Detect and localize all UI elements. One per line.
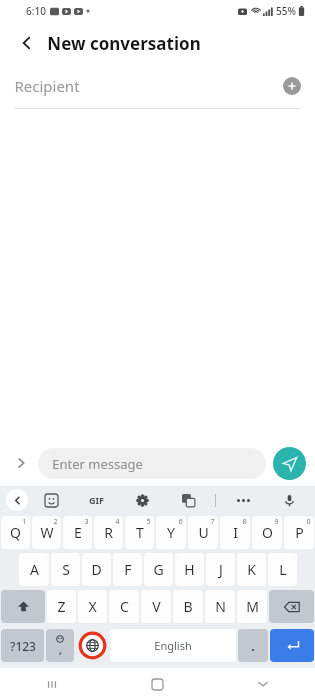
button[interactable]: Settings [129, 487, 155, 513]
button[interactable]: Enter [270, 629, 314, 662]
staticText: Enter message [52, 455, 143, 473]
staticText: 55% [276, 4, 296, 18]
staticText: 0 [306, 517, 311, 527]
button[interactable]: U [188, 516, 218, 549]
staticText: N [215, 597, 226, 616]
button[interactable]: T [125, 516, 154, 549]
button[interactable]: B [173, 590, 203, 623]
staticText: R [104, 523, 113, 542]
button[interactable]: Z [47, 590, 76, 623]
button[interactable]: Collapse toolbar [6, 489, 28, 511]
button[interactable]: Hide keyboard [210, 668, 315, 700]
staticText: I [233, 523, 238, 542]
button[interactable]: K [237, 553, 266, 586]
staticText: W [40, 523, 54, 542]
button[interactable]: Enter message [38, 448, 266, 479]
button[interactable]: I [220, 516, 250, 549]
staticText: P [295, 523, 304, 542]
staticText: S [62, 560, 70, 579]
staticText: 6 [178, 517, 183, 527]
button[interactable]: O [252, 516, 282, 549]
button[interactable]: J [206, 553, 235, 586]
button[interactable]: H [175, 553, 204, 586]
button[interactable]: E [63, 516, 92, 549]
button[interactable]: N [205, 590, 235, 623]
staticText: , [59, 643, 62, 657]
button[interactable]: R [94, 516, 123, 549]
staticText: Y [167, 523, 175, 542]
staticText: 1 [22, 517, 27, 527]
button[interactable]: Send [273, 447, 306, 480]
button[interactable]: V [141, 590, 171, 623]
button[interactable]: Shift [1, 590, 45, 623]
staticText: Recipient [14, 76, 80, 96]
staticText: English [154, 638, 192, 653]
staticText: U [198, 523, 209, 542]
staticText: M [246, 597, 259, 616]
button[interactable]: Home [105, 668, 210, 700]
button[interactable]: M [237, 590, 267, 623]
staticText: GIF [89, 494, 104, 506]
button[interactable]: Stickers [38, 487, 64, 513]
button[interactable]: Expand [9, 451, 33, 475]
button[interactable]: Emoji and comma [46, 629, 74, 662]
staticText: B [183, 597, 193, 616]
button[interactable]: Voice input [276, 487, 302, 513]
staticText: 8 [242, 517, 247, 527]
button[interactable]: Translate [175, 487, 201, 513]
staticText: O [262, 523, 273, 542]
staticText: ?123 [10, 638, 36, 654]
staticText: T [136, 523, 144, 542]
staticText: New conversation [47, 32, 201, 55]
button[interactable]: More options [230, 487, 256, 513]
button[interactable]: A [19, 553, 49, 586]
staticText: 3 [84, 517, 89, 527]
staticText: 9 [274, 517, 279, 527]
button[interactable]: D [82, 553, 111, 586]
button[interactable]: W [32, 516, 61, 549]
staticText: F [124, 560, 132, 579]
staticText: G [153, 560, 164, 579]
button[interactable]: F [113, 553, 142, 586]
staticText: E [74, 523, 82, 542]
button[interactable]: S [51, 553, 80, 586]
staticText: J [219, 560, 223, 579]
staticText: . [251, 637, 255, 655]
staticText: H [184, 560, 195, 579]
staticText: 2 [53, 517, 58, 527]
button[interactable]: Recents [0, 668, 105, 700]
staticText: V [152, 597, 161, 616]
staticText: 6:10 [26, 4, 46, 18]
button[interactable]: Y [156, 516, 186, 549]
staticText: L [279, 560, 287, 579]
button[interactable]: G [144, 553, 173, 586]
button[interactable]: L [268, 553, 297, 586]
button[interactable]: Q [1, 516, 30, 549]
staticText: X [88, 597, 97, 616]
staticText: K [247, 560, 256, 579]
button[interactable]: Backspace [269, 590, 314, 623]
button[interactable]: Back [14, 30, 40, 56]
button[interactable]: C [109, 590, 139, 623]
staticText: A [30, 560, 39, 579]
button[interactable]: X [78, 590, 107, 623]
staticText: C [120, 597, 129, 616]
staticText: D [91, 560, 102, 579]
staticText: 5 [146, 517, 151, 527]
button[interactable]: Period [238, 629, 268, 662]
staticText: Q [10, 523, 21, 542]
button[interactable]: Change keyboard language [76, 626, 108, 664]
button[interactable]: ?123 [1, 629, 44, 662]
button[interactable]: Add recipient [283, 77, 301, 95]
button[interactable]: English [110, 629, 236, 662]
staticText: 4 [115, 517, 120, 527]
button[interactable]: GIF [83, 487, 109, 513]
button[interactable]: P [284, 516, 314, 549]
staticText: 7 [210, 517, 215, 527]
staticText: Z [57, 597, 66, 616]
